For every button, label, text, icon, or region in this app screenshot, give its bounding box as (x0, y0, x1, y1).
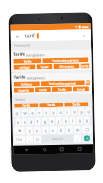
button[interactable]: Talltone (14, 81, 40, 87)
staticText: u (59, 110, 62, 115)
staticText: i (66, 110, 68, 115)
button[interactable]: s (21, 117, 27, 126)
button[interactable]: ?123 (14, 136, 25, 144)
button[interactable]: Tarife (64, 102, 88, 107)
staticText: Tarife (47, 103, 56, 107)
staticText: v (52, 128, 55, 133)
button[interactable]: Hide keyboard (75, 144, 84, 153)
button[interactable]: b (58, 126, 65, 134)
staticText: Tarife (23, 59, 32, 64)
staticText: stelgan (19, 65, 30, 70)
button[interactable]: ä (83, 116, 90, 124)
button[interactable]: Tarife (14, 103, 38, 108)
button[interactable]: Back (22, 145, 31, 155)
button[interactable]: Tarife (35, 87, 51, 92)
button[interactable]: a (15, 118, 21, 126)
button[interactable]: Tatkonsideeproien (42, 57, 88, 63)
button[interactable]: , (26, 135, 33, 143)
staticText: nonglsparn (26, 52, 45, 57)
button[interactable]: Tarife (80, 63, 89, 68)
staticText: Tatllind (86, 80, 90, 85)
staticText: terlogwerts (27, 75, 46, 80)
staticText: a (17, 120, 20, 125)
staticText: Tarife (58, 88, 67, 92)
button[interactable]: ö (76, 116, 83, 124)
staticText: tarif (25, 32, 36, 39)
button[interactable]: e (29, 108, 35, 116)
button[interactable]: q (13, 109, 20, 117)
button[interactable]: Backspace (82, 125, 92, 133)
button[interactable]: . (74, 134, 81, 142)
button[interactable]: o (71, 107, 77, 116)
staticText: r (38, 110, 40, 115)
staticText: ö (79, 118, 82, 123)
button[interactable]: Clear (80, 31, 88, 39)
button[interactable]: Tarife (13, 58, 41, 64)
staticText: k (65, 119, 68, 124)
button[interactable]: Tarife (36, 64, 52, 69)
staticText: l (72, 119, 74, 124)
button[interactable]: l (69, 116, 76, 125)
button[interactable]: p (78, 107, 84, 115)
button[interactable]: m (74, 125, 81, 133)
staticText: , (29, 137, 31, 142)
staticText: Tarife (39, 88, 48, 92)
staticText: ?123 (16, 138, 23, 142)
button[interactable]: Minimixte (53, 63, 79, 69)
button[interactable]: k (62, 117, 69, 125)
staticText: Talltone (21, 82, 33, 87)
staticText: Preisstand (14, 43, 30, 48)
staticText: Alganta (18, 88, 30, 93)
button[interactable]: Tarife (52, 87, 72, 92)
button[interactable]: Shift (14, 127, 25, 135)
button[interactable]: Tatllind (86, 80, 90, 85)
button[interactable]: h (48, 117, 55, 125)
staticText: o (73, 109, 76, 115)
button[interactable]: Alganta (14, 87, 34, 93)
button[interactable]: c (42, 126, 49, 134)
button[interactable]: y (50, 108, 56, 116)
button[interactable]: i (64, 108, 70, 116)
button[interactable]: Recents (57, 145, 66, 154)
staticText: p (80, 109, 83, 114)
staticText: b (60, 128, 63, 133)
staticText: c (45, 128, 47, 133)
button[interactable]: Tarife (39, 103, 63, 107)
button[interactable]: Deutsch (42, 135, 73, 143)
button[interactable]: u (57, 108, 63, 116)
staticText: j (58, 119, 60, 124)
button[interactable]: Search (82, 134, 92, 142)
button[interactable]: ü (85, 107, 91, 115)
button[interactable]: x (34, 126, 41, 134)
staticText: Tarife (14, 74, 26, 81)
staticText: . (77, 136, 79, 141)
button[interactable]: Tarikosiderapienen (41, 80, 85, 86)
button[interactable]: g (41, 117, 48, 125)
staticText: y (52, 110, 55, 115)
button[interactable]: stelgan (13, 64, 35, 70)
button[interactable]: tanga (73, 86, 89, 91)
button[interactable]: d (27, 117, 34, 125)
staticText: ü (87, 109, 90, 114)
button[interactable]: Emoji (34, 135, 41, 143)
staticText: d (30, 119, 33, 124)
button[interactable]: w (21, 108, 28, 117)
button[interactable]: tarif (25, 31, 80, 40)
button[interactable]: f (34, 117, 41, 125)
button[interactable]: r (36, 108, 42, 116)
button[interactable]: Tarife (13, 50, 89, 71)
button[interactable]: Tarife (14, 73, 90, 94)
button[interactable]: t (43, 108, 49, 116)
staticText: t (45, 110, 47, 115)
button[interactable]: j (55, 117, 62, 125)
button[interactable]: Back (14, 33, 22, 41)
staticText: f (37, 119, 39, 124)
button[interactable]: z (26, 126, 33, 134)
staticText: Tatkonsideeproien (52, 58, 79, 63)
staticText: tanga (77, 87, 86, 91)
button[interactable]: n (66, 126, 73, 134)
staticText: m (76, 127, 80, 132)
button[interactable]: v (50, 126, 57, 134)
button[interactable]: Home (40, 145, 49, 154)
staticText: Deutsch (52, 137, 63, 141)
